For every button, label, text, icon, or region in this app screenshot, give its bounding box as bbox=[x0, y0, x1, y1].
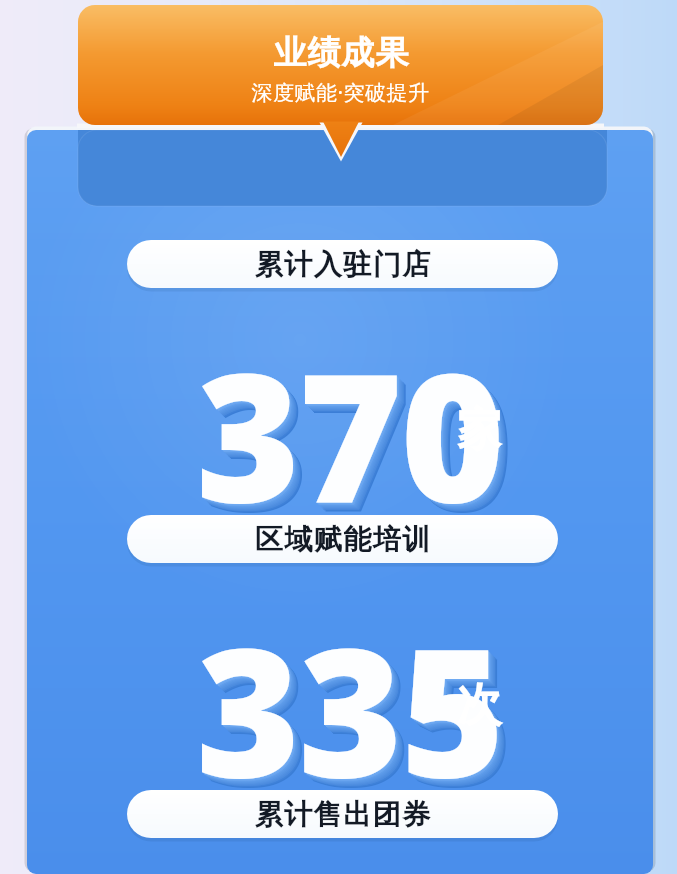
staticText: 335 bbox=[196, 587, 503, 829]
button[interactable]: 业绩成果 bbox=[78, 5, 603, 125]
staticText: 370 bbox=[199, 315, 506, 557]
staticText: 深度赋能·突破提升 bbox=[251, 78, 430, 107]
staticText: 335 bbox=[204, 595, 511, 837]
staticText: 家 bbox=[457, 402, 502, 459]
staticText: 370 bbox=[197, 313, 504, 555]
staticText: 累计售出团券 bbox=[254, 797, 431, 832]
staticText: 区域赋能培训 bbox=[254, 522, 431, 557]
staticText: 业绩成果 bbox=[273, 32, 409, 74]
staticText: 335 bbox=[197, 588, 504, 830]
staticText: 335 bbox=[205, 596, 512, 838]
staticText: 370 bbox=[198, 314, 505, 556]
staticText: 370 bbox=[203, 319, 510, 561]
staticText: 累计入驻门店 bbox=[254, 247, 431, 282]
staticText: 370 bbox=[202, 318, 509, 560]
staticText: 335 bbox=[203, 594, 510, 836]
button[interactable]: 区域赋能培训 bbox=[127, 515, 558, 563]
button[interactable]: 累计入驻门店 bbox=[127, 240, 558, 288]
staticText: 335 bbox=[201, 592, 508, 834]
staticText: 370 bbox=[198, 314, 505, 556]
staticText: 335 bbox=[199, 590, 506, 832]
staticText: 370 bbox=[200, 316, 507, 558]
staticText: 370 bbox=[205, 321, 512, 563]
staticText: 370 bbox=[203, 319, 510, 561]
staticText: 335 bbox=[202, 593, 509, 835]
staticText: 370 bbox=[196, 312, 503, 554]
staticText: 335 bbox=[203, 594, 510, 836]
staticText: 370 bbox=[201, 317, 508, 559]
staticText: 370 bbox=[204, 320, 511, 562]
staticText: 335 bbox=[200, 591, 507, 833]
staticText: 335 bbox=[198, 589, 505, 831]
staticText: 次 bbox=[457, 677, 502, 734]
staticText: 335 bbox=[198, 589, 505, 831]
button[interactable]: 累计售出团券 bbox=[127, 790, 558, 838]
